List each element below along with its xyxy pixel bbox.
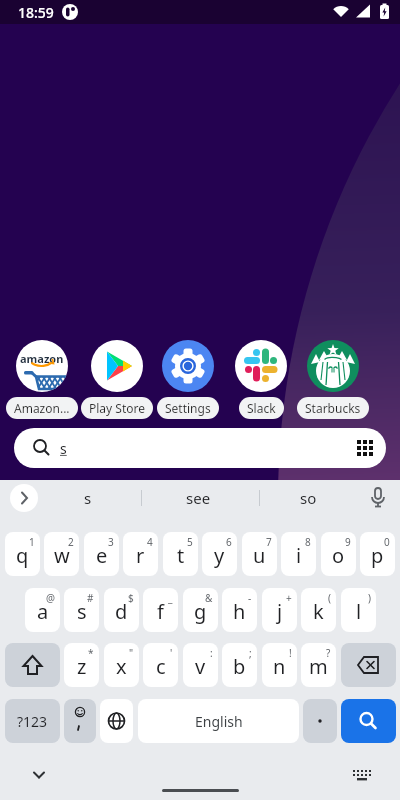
- staticText: m: [309, 653, 328, 680]
- staticText: ': [170, 646, 173, 660]
- button[interactable]: [24, 762, 54, 784]
- button[interactable]: e: [84, 532, 119, 576]
- button[interactable]: z: [64, 643, 99, 687]
- staticText: p: [371, 542, 384, 569]
- staticText: v: [195, 653, 206, 680]
- button[interactable]: w: [44, 532, 79, 576]
- staticText: -: [248, 591, 252, 605]
- staticText: r: [136, 542, 145, 569]
- staticText: 4: [147, 535, 153, 549]
- button[interactable]: [5, 643, 60, 687]
- staticText: 1: [29, 535, 35, 549]
- staticText: o: [332, 542, 345, 569]
- button[interactable]: k: [301, 588, 336, 632]
- staticText: English: [195, 712, 243, 731]
- button[interactable]: s: [58, 480, 118, 516]
- staticText: *: [88, 646, 94, 660]
- staticText: #: [87, 591, 94, 605]
- staticText: @: [46, 591, 55, 605]
- staticText: a: [37, 598, 49, 625]
- staticText: Amazon...: [14, 400, 70, 416]
- button[interactable]: [366, 486, 390, 510]
- staticText: x: [116, 653, 127, 680]
- staticText: s: [84, 488, 92, 508]
- staticText: f: [157, 598, 164, 625]
- staticText: q: [16, 542, 29, 569]
- staticText: ?123: [17, 712, 48, 731]
- staticText: w: [54, 542, 70, 569]
- button[interactable]: c: [143, 643, 178, 687]
- staticText: 7: [266, 535, 272, 549]
- button[interactable]: a: [25, 588, 60, 632]
- button[interactable]: Slack: [221, 340, 301, 419]
- button[interactable]: [341, 699, 396, 743]
- staticText: l: [356, 598, 362, 625]
- staticText: 6: [226, 535, 232, 549]
- staticText: Settings: [165, 400, 211, 416]
- button[interactable]: o: [321, 532, 356, 576]
- button[interactable]: [10, 484, 38, 512]
- staticText: ": [129, 646, 134, 660]
- staticText: b: [233, 653, 246, 680]
- staticText: 8: [305, 535, 311, 549]
- button[interactable]: Play Store: [77, 340, 157, 419]
- staticText: s: [77, 598, 87, 625]
- staticText: n: [273, 653, 286, 680]
- staticText: amazon: [20, 351, 64, 366]
- staticText: i: [296, 542, 302, 569]
- button[interactable]: [303, 699, 337, 743]
- button[interactable]: ?123: [5, 699, 60, 743]
- staticText: 5: [187, 535, 193, 549]
- button[interactable]: t: [163, 532, 198, 576]
- staticText: !: [289, 646, 292, 660]
- staticText: k: [313, 598, 324, 625]
- staticText: see: [186, 488, 211, 508]
- button[interactable]: see: [168, 480, 228, 516]
- button[interactable]: m: [301, 643, 336, 687]
- staticText: ;: [249, 646, 252, 660]
- button[interactable]: x: [104, 643, 139, 687]
- staticText: z: [77, 653, 87, 680]
- button[interactable]: [100, 699, 133, 743]
- button[interactable]: h: [222, 588, 257, 632]
- staticText: (: [328, 591, 331, 605]
- staticText: g: [194, 598, 207, 625]
- button[interactable]: English: [138, 699, 299, 743]
- button[interactable]: amazon: [2, 340, 82, 419]
- staticText: y: [214, 542, 225, 569]
- staticText: 0: [384, 535, 390, 549]
- button[interactable]: [349, 767, 375, 787]
- staticText: e: [96, 542, 108, 569]
- button[interactable]: f: [143, 588, 178, 632]
- button[interactable]: Starbucks: [293, 340, 373, 419]
- button[interactable]: d: [104, 588, 139, 632]
- button[interactable]: i: [281, 532, 316, 576]
- button[interactable]: l: [341, 588, 376, 632]
- staticText: _: [168, 591, 173, 605]
- staticText: d: [115, 598, 128, 625]
- button[interactable]: so: [278, 480, 338, 516]
- staticText: 9: [345, 535, 351, 549]
- button[interactable]: u: [242, 532, 277, 576]
- staticText: 2: [68, 535, 74, 549]
- button[interactable]: v: [183, 643, 218, 687]
- staticText: ): [368, 591, 371, 605]
- button[interactable]: y: [202, 532, 237, 576]
- button[interactable]: q: [5, 532, 40, 576]
- button[interactable]: b: [222, 643, 257, 687]
- staticText: c: [156, 653, 166, 680]
- button[interactable]: [341, 643, 396, 687]
- button[interactable]: Settings: [148, 340, 228, 419]
- button[interactable]: p: [360, 532, 395, 576]
- button[interactable]: n: [262, 643, 297, 687]
- button[interactable]: s: [14, 428, 386, 468]
- button[interactable]: s: [64, 588, 99, 632]
- staticText: j: [277, 598, 283, 625]
- button[interactable]: [64, 699, 96, 743]
- button[interactable]: g: [183, 588, 218, 632]
- staticText: h: [233, 598, 246, 625]
- staticText: ?: [326, 646, 331, 660]
- button[interactable]: j: [262, 588, 297, 632]
- staticText: u: [253, 542, 266, 569]
- button[interactable]: r: [123, 532, 158, 576]
